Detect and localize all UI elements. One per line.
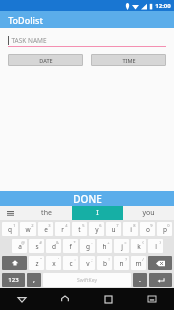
staticText: = — [124, 240, 127, 245]
staticText: x — [52, 259, 56, 268]
button[interactable]: l — [148, 239, 163, 253]
staticText: - — [91, 240, 93, 245]
button[interactable]: TASK NAME — [8, 34, 166, 46]
staticText: ! — [108, 257, 110, 262]
staticText: j — [121, 242, 123, 251]
staticText: q — [8, 225, 12, 234]
button[interactable]: Keyboard menu — [0, 206, 20, 220]
staticText: ? — [125, 257, 127, 262]
staticText: 9 — [150, 223, 153, 228]
staticText: @ — [21, 240, 25, 245]
button[interactable]: DONE — [0, 191, 174, 206]
button[interactable]: d — [46, 239, 61, 253]
staticText: e — [44, 225, 48, 234]
staticText: # — [39, 240, 42, 245]
button[interactable]: Home — [43, 288, 86, 310]
button[interactable]: TIME — [91, 54, 166, 66]
button[interactable]: DATE — [8, 54, 83, 66]
staticText: you — [142, 208, 155, 218]
staticText: the — [41, 208, 52, 218]
staticText: I — [96, 208, 99, 218]
staticText: z — [35, 259, 39, 268]
button[interactable]: a — [12, 239, 27, 253]
staticText: / — [142, 257, 144, 262]
button[interactable]: w — [20, 222, 36, 236]
staticText: & — [56, 240, 59, 245]
staticText: m — [135, 259, 142, 268]
staticText: ) — [159, 240, 161, 245]
staticText: 3 — [48, 223, 51, 228]
staticText: g — [86, 242, 90, 251]
staticText: 8 — [133, 223, 136, 228]
staticText: o — [146, 225, 150, 234]
button[interactable]: f — [63, 239, 78, 253]
button[interactable]: g — [80, 239, 95, 253]
button[interactable]: Enter — [149, 273, 172, 287]
button[interactable]: m — [131, 256, 146, 270]
staticText: w — [25, 225, 31, 234]
button[interactable]: t — [72, 222, 87, 236]
staticText: a — [18, 242, 22, 251]
button[interactable]: Comma — [27, 273, 41, 287]
staticText: i — [130, 225, 132, 234]
button[interactable]: e — [38, 222, 53, 236]
button[interactable]: Backspace — [148, 256, 172, 270]
staticText: TASK NAME — [11, 36, 47, 45]
button[interactable]: v — [80, 256, 95, 270]
staticText: r — [61, 225, 64, 234]
staticText: DONE — [73, 192, 102, 206]
staticText: : — [74, 257, 76, 262]
button[interactable]: q — [2, 222, 18, 236]
staticText: 5 — [82, 223, 85, 228]
staticText: . — [139, 275, 141, 285]
staticText: 12:00 — [155, 2, 171, 10]
button[interactable]: the — [20, 206, 72, 220]
button[interactable]: y — [89, 222, 104, 236]
button[interactable]: Period — [133, 273, 147, 287]
staticText: 2 — [31, 223, 34, 228]
button[interactable]: o — [140, 222, 155, 236]
button[interactable]: Recent apps — [86, 288, 130, 310]
button[interactable]: b — [97, 256, 112, 270]
staticText: n — [119, 259, 124, 268]
staticText: SwiftKey — [77, 277, 97, 284]
staticText: ( — [142, 240, 144, 245]
button[interactable]: h — [97, 239, 112, 253]
button[interactable]: j — [114, 239, 129, 253]
button[interactable]: Hide keyboard — [0, 288, 43, 310]
button[interactable]: r — [55, 222, 70, 236]
staticText: 4 — [65, 223, 68, 228]
button[interactable]: z — [29, 256, 44, 270]
staticText: 6 — [99, 223, 102, 228]
button[interactable]: u — [106, 222, 121, 236]
staticText: , — [33, 275, 35, 285]
button[interactable]: Shift — [2, 256, 27, 270]
button[interactable]: Space — [43, 273, 131, 287]
staticText: 7 — [116, 223, 119, 228]
staticText: 1 — [13, 223, 16, 228]
button[interactable]: you — [123, 206, 174, 220]
staticText: t — [78, 225, 81, 234]
staticText: TIME — [122, 57, 136, 64]
button[interactable]: i — [123, 222, 138, 236]
button[interactable]: s — [29, 239, 44, 253]
staticText: ' — [58, 257, 59, 262]
button[interactable]: x — [46, 256, 61, 270]
button[interactable]: I — [72, 206, 123, 220]
staticText: h — [102, 242, 107, 251]
button[interactable]: k — [131, 239, 146, 253]
button[interactable]: c — [63, 256, 78, 270]
staticText: p — [163, 225, 167, 234]
staticText: b — [103, 259, 107, 268]
staticText: d — [52, 242, 56, 251]
staticText: s — [35, 242, 39, 251]
staticText: 123 — [8, 276, 19, 284]
staticText: " — [40, 257, 42, 262]
button[interactable]: p — [157, 222, 172, 236]
button[interactable]: Numbers — [2, 273, 25, 287]
button[interactable]: n — [114, 256, 129, 270]
button[interactable]: Switch keyboard — [130, 288, 174, 310]
staticText: * — [73, 240, 76, 245]
staticText: u — [111, 225, 116, 234]
staticText: ; — [91, 257, 93, 262]
